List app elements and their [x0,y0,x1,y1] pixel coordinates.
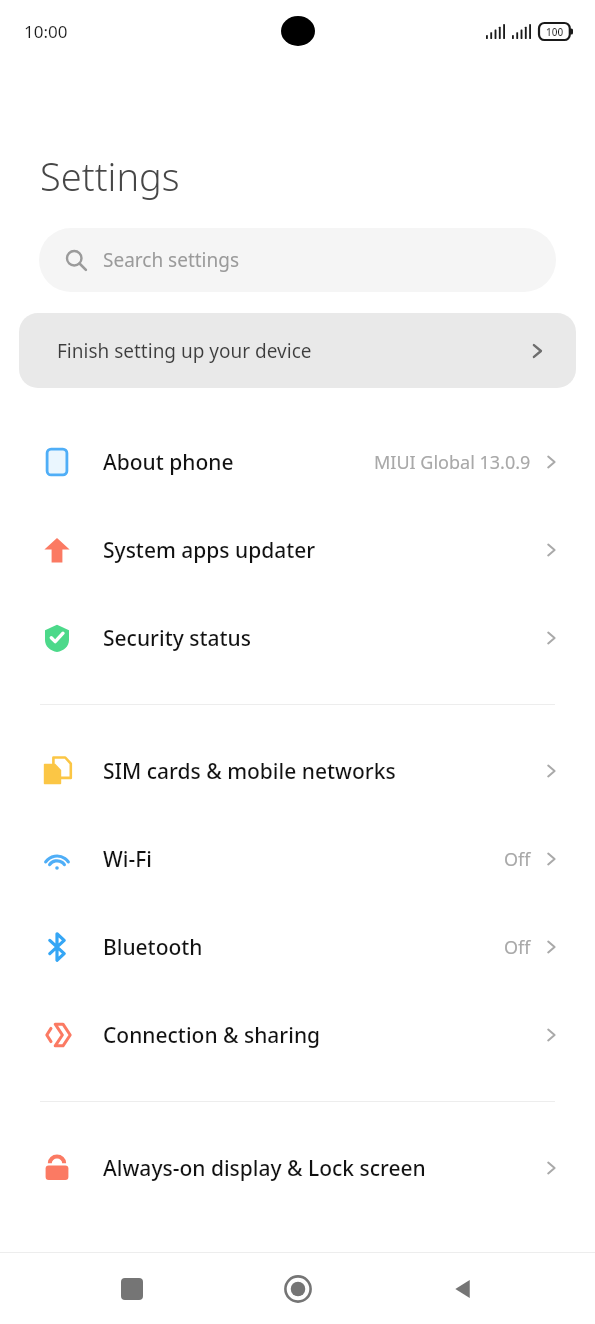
button[interactable]: Recent apps [98,1255,166,1323]
staticText: System apps updater [103,536,541,565]
button[interactable]: Home [264,1255,332,1323]
button[interactable]: SIM cards & mobile networks [0,727,595,815]
button[interactable]: System apps updater [0,506,595,594]
button[interactable]: Wi-Fi [0,815,595,903]
staticText: Bluetooth [103,933,504,962]
staticText: Wi-Fi [103,845,504,874]
staticText: About phone [103,448,374,477]
button[interactable]: Connection & sharing [0,991,595,1079]
button[interactable]: Search settings [39,228,556,292]
staticText: Settings [40,150,180,202]
staticText: SIM cards & mobile networks [103,757,541,786]
staticText: Off [504,847,531,872]
button[interactable]: Security status [0,594,595,682]
staticText: Connection & sharing [103,1021,541,1050]
button[interactable]: Finish setting up your device [19,313,576,388]
staticText: Off [504,935,531,960]
button[interactable]: Always-on display & Lock screen [0,1124,595,1212]
staticText: Search settings [103,247,240,273]
button[interactable]: Back [429,1255,497,1323]
button[interactable]: Bluetooth [0,903,595,991]
staticText: MIUI Global 13.0.9 [374,450,531,475]
staticText: Always-on display & Lock screen [103,1154,541,1183]
staticText: Security status [103,624,541,653]
button[interactable]: About phone [0,418,595,506]
staticText: Finish setting up your device [57,338,526,364]
staticText: 100 [546,25,564,39]
staticText: 10:00 [24,20,68,43]
